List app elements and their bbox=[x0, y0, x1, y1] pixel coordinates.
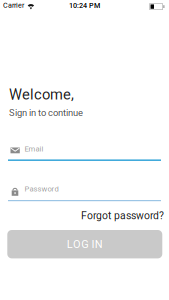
staticText: Forgot password? bbox=[81, 209, 164, 222]
staticText: Sign in to continue bbox=[9, 107, 83, 118]
button[interactable]: LOG IN bbox=[7, 230, 162, 258]
staticText: Email bbox=[24, 144, 43, 153]
staticText: Carrier bbox=[3, 1, 24, 9]
staticText: Password bbox=[24, 184, 58, 193]
staticText: LOG IN bbox=[67, 238, 103, 251]
staticText: Welcome, bbox=[9, 86, 74, 103]
button[interactable]: Forgot password? bbox=[81, 209, 164, 222]
staticText: 10:24 PM bbox=[69, 1, 100, 10]
